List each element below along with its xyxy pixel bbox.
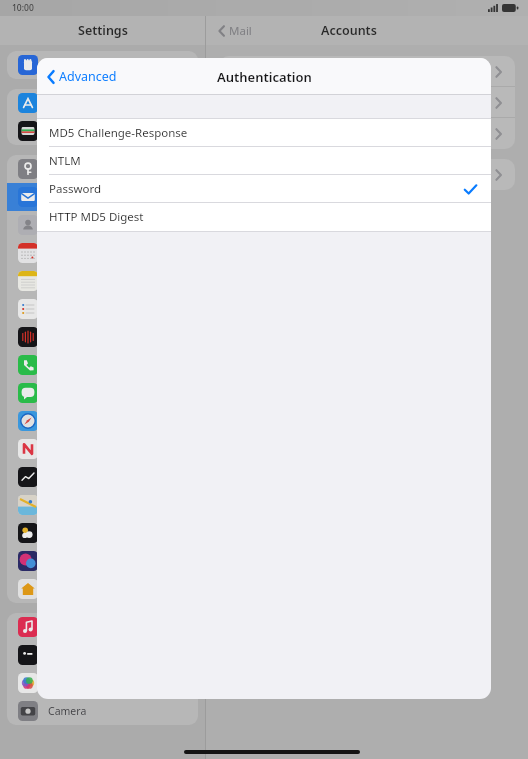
staticText: Advanced bbox=[59, 68, 117, 85]
button[interactable]: Voice Memos bbox=[7, 323, 198, 351]
button[interactable]: Maps bbox=[7, 491, 198, 519]
staticText: Password bbox=[49, 181, 464, 197]
button[interactable]: Messages bbox=[7, 379, 198, 407]
staticText: HTTP MD5 Digest bbox=[49, 209, 477, 225]
staticText: 10:00 bbox=[12, 2, 34, 14]
button[interactable]: Contacts bbox=[7, 211, 198, 239]
button[interactable]: Mail bbox=[7, 183, 198, 211]
button[interactable]: NTLM bbox=[37, 147, 491, 175]
staticText: NTLM bbox=[49, 153, 477, 169]
staticText: Wallet bbox=[48, 124, 79, 138]
staticText: Privacy bbox=[48, 58, 84, 72]
button[interactable]: Safari bbox=[7, 407, 198, 435]
button[interactable]: Music bbox=[7, 613, 198, 641]
staticText: Passwords bbox=[48, 162, 101, 176]
button[interactable]: Wallet bbox=[7, 117, 198, 145]
button[interactable]: News bbox=[7, 435, 198, 463]
button[interactable]: Photos bbox=[7, 669, 198, 697]
button[interactable]: Stocks bbox=[7, 463, 198, 491]
staticText: Authentication bbox=[217, 68, 312, 86]
button[interactable]: Advanced bbox=[47, 68, 117, 85]
button[interactable]: MD5 Challenge-Response bbox=[37, 119, 491, 147]
button[interactable] bbox=[219, 159, 515, 190]
button[interactable]: Home bbox=[7, 575, 198, 603]
button[interactable]: Calendar bbox=[7, 239, 198, 267]
staticText: Settings bbox=[78, 22, 128, 39]
staticText: Contacts bbox=[48, 218, 92, 232]
button[interactable] bbox=[219, 56, 515, 87]
button[interactable]: Password bbox=[37, 175, 491, 203]
button[interactable]: Mail bbox=[218, 23, 252, 39]
button[interactable]: TV bbox=[7, 641, 198, 669]
button[interactable]: Weather bbox=[7, 519, 198, 547]
button[interactable]: Privacy bbox=[7, 51, 198, 79]
staticText: Camera bbox=[48, 704, 87, 718]
button[interactable]: Reminders bbox=[7, 295, 198, 323]
button[interactable] bbox=[219, 87, 515, 118]
button[interactable]: Translate bbox=[7, 547, 198, 575]
button[interactable]: Passwords bbox=[7, 155, 198, 183]
button[interactable]: HTTP MD5 Digest bbox=[37, 203, 491, 231]
button[interactable]: App Store bbox=[7, 89, 198, 117]
staticText: Mail bbox=[48, 190, 69, 204]
staticText: MD5 Challenge-Response bbox=[49, 125, 477, 141]
button[interactable]: Notes bbox=[7, 267, 198, 295]
button[interactable]: Phone bbox=[7, 351, 198, 379]
button[interactable]: Camera bbox=[7, 697, 198, 725]
staticText: Accounts bbox=[321, 22, 377, 39]
button[interactable] bbox=[219, 118, 515, 149]
staticText: Mail bbox=[229, 23, 252, 39]
